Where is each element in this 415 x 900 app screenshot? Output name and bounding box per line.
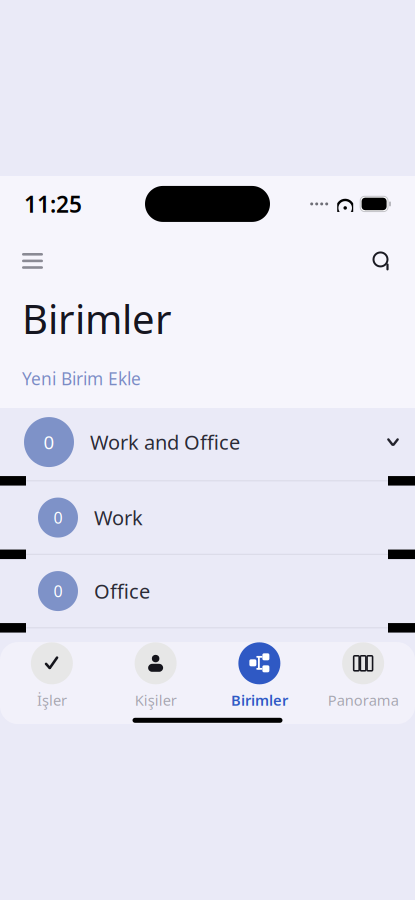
staticText: Kişiler — [135, 690, 177, 710]
button[interactable]: Kişiler — [104, 632, 208, 710]
button[interactable]: Panorama — [311, 632, 415, 710]
staticText: 0 — [53, 507, 62, 528]
staticText: 11:25 — [24, 189, 82, 219]
button[interactable]: 0 — [0, 486, 415, 550]
button[interactable]: Birimler — [207, 632, 311, 710]
staticText: Yeni Birim Ekle — [22, 367, 141, 390]
button[interactable]: 0 — [0, 559, 415, 623]
button[interactable]: Search — [363, 242, 401, 280]
button[interactable]: İşler — [0, 632, 104, 710]
staticText: İşler — [37, 690, 67, 710]
staticText: Birimler — [231, 690, 288, 710]
staticText: Office — [94, 578, 150, 604]
button[interactable]: 0 — [0, 408, 415, 476]
staticText: 0 — [53, 580, 62, 602]
staticText: Panorama — [328, 690, 399, 710]
staticText: 0 — [43, 430, 54, 454]
staticText: Birimler — [22, 292, 172, 345]
button[interactable]: Yeni Birim Ekle — [22, 367, 141, 390]
staticText: Work and Office — [90, 429, 240, 455]
staticText: Work — [94, 504, 143, 531]
button[interactable]: Menu — [14, 243, 51, 279]
